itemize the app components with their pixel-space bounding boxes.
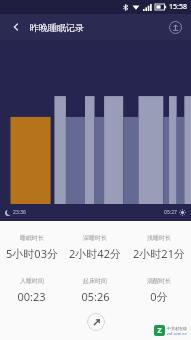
button[interactable]: Activity bbox=[87, 313, 105, 331]
button[interactable]: Share bbox=[165, 17, 185, 37]
staticText: 00:23 bbox=[17, 289, 46, 304]
staticText: 5小时03分 bbox=[6, 246, 58, 261]
staticText: 深睡时长 bbox=[83, 234, 107, 242]
staticText: 2小时42分 bbox=[69, 246, 121, 261]
staticText: 0分 bbox=[150, 289, 168, 304]
staticText: 23:36 bbox=[13, 209, 26, 216]
staticText: 05:27 bbox=[164, 209, 177, 216]
staticText: 昨晚睡眠记录 bbox=[30, 22, 84, 33]
staticText: 浅睡时长 bbox=[147, 234, 171, 242]
button[interactable]: Back bbox=[6, 17, 26, 37]
staticText: 起床时间 bbox=[83, 277, 107, 285]
staticText: 15:58 bbox=[169, 2, 187, 12]
staticText: 入睡时间 bbox=[20, 277, 44, 285]
staticText: 05:26 bbox=[81, 289, 110, 304]
staticText: 睡眠时长 bbox=[20, 234, 44, 242]
staticText: 清醒时长 bbox=[147, 277, 171, 285]
staticText: 2小时21分 bbox=[133, 246, 185, 261]
staticText: 中关村在线 bbox=[167, 326, 187, 331]
staticText: Z bbox=[157, 326, 162, 336]
staticText: zol.com.cn bbox=[167, 331, 187, 336]
